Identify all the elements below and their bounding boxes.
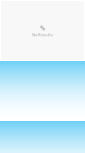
staticText: No Results	[32, 32, 53, 37]
